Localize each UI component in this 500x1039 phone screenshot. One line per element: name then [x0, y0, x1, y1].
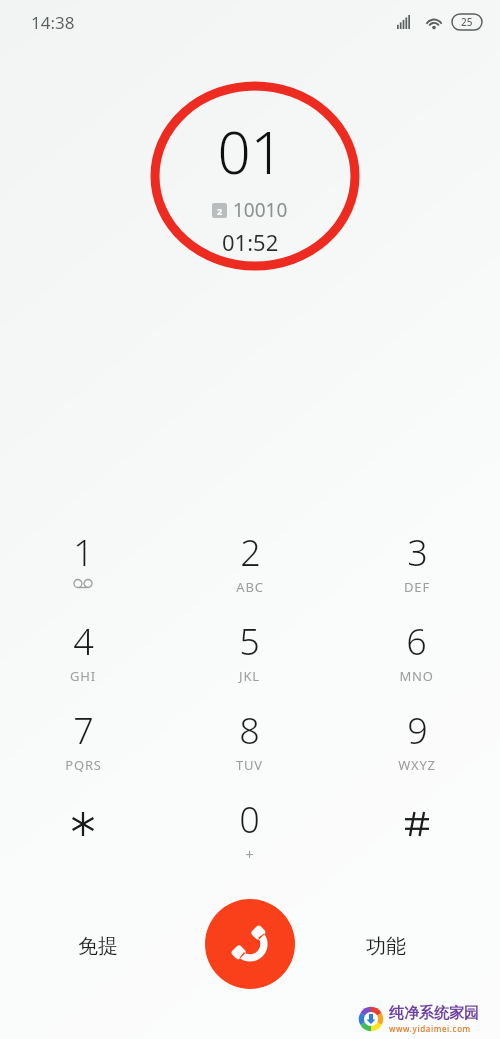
staticText: 01 — [217, 112, 284, 191]
staticText: 纯净系统家园 — [389, 1004, 479, 1023]
staticText: 9 — [407, 706, 428, 755]
staticText: ABC — [236, 578, 264, 596]
staticText: 3 — [407, 528, 428, 577]
staticText: GHI — [70, 667, 96, 685]
staticText: 0 — [239, 795, 260, 844]
staticText: JKL — [239, 667, 260, 685]
staticText: 25 — [461, 15, 473, 29]
button[interactable]: 4 — [0, 611, 166, 700]
staticText: PQRS — [65, 756, 102, 774]
button[interactable]: 9 — [333, 700, 500, 789]
button[interactable]: 0 — [166, 789, 333, 881]
button[interactable]: 2 — [166, 522, 333, 611]
staticText: 2 — [217, 205, 223, 217]
button[interactable]: 3 — [333, 522, 500, 611]
button[interactable] — [333, 789, 500, 881]
staticText: 1 — [73, 528, 94, 577]
staticText: 6 — [406, 617, 427, 666]
staticText: + — [245, 844, 255, 864]
staticText: 2 — [240, 528, 261, 577]
button[interactable]: 7 — [0, 700, 166, 789]
staticText: 14:38 — [31, 11, 75, 34]
staticText: 7 — [73, 706, 94, 755]
button[interactable]: End call — [205, 899, 295, 989]
button[interactable]: 免提 — [72, 928, 124, 965]
button[interactable]: 1 — [0, 522, 166, 611]
button[interactable]: 8 — [166, 700, 333, 789]
staticText: www.yidaimei.com — [389, 1023, 471, 1034]
staticText: 5 — [239, 617, 260, 666]
staticText: DEF — [404, 578, 430, 596]
button[interactable]: 6 — [333, 611, 500, 700]
staticText: 8 — [239, 706, 260, 755]
staticText: 4 — [73, 617, 94, 666]
button[interactable]: 功能 — [360, 928, 412, 965]
staticText: MNO — [399, 667, 434, 685]
staticText: TUV — [236, 756, 263, 774]
button[interactable]: 5 — [166, 611, 333, 700]
staticText: 10010 — [233, 197, 288, 223]
staticText: WXYZ — [398, 756, 436, 774]
staticText: 01:52 — [222, 227, 279, 257]
button[interactable] — [0, 789, 166, 881]
